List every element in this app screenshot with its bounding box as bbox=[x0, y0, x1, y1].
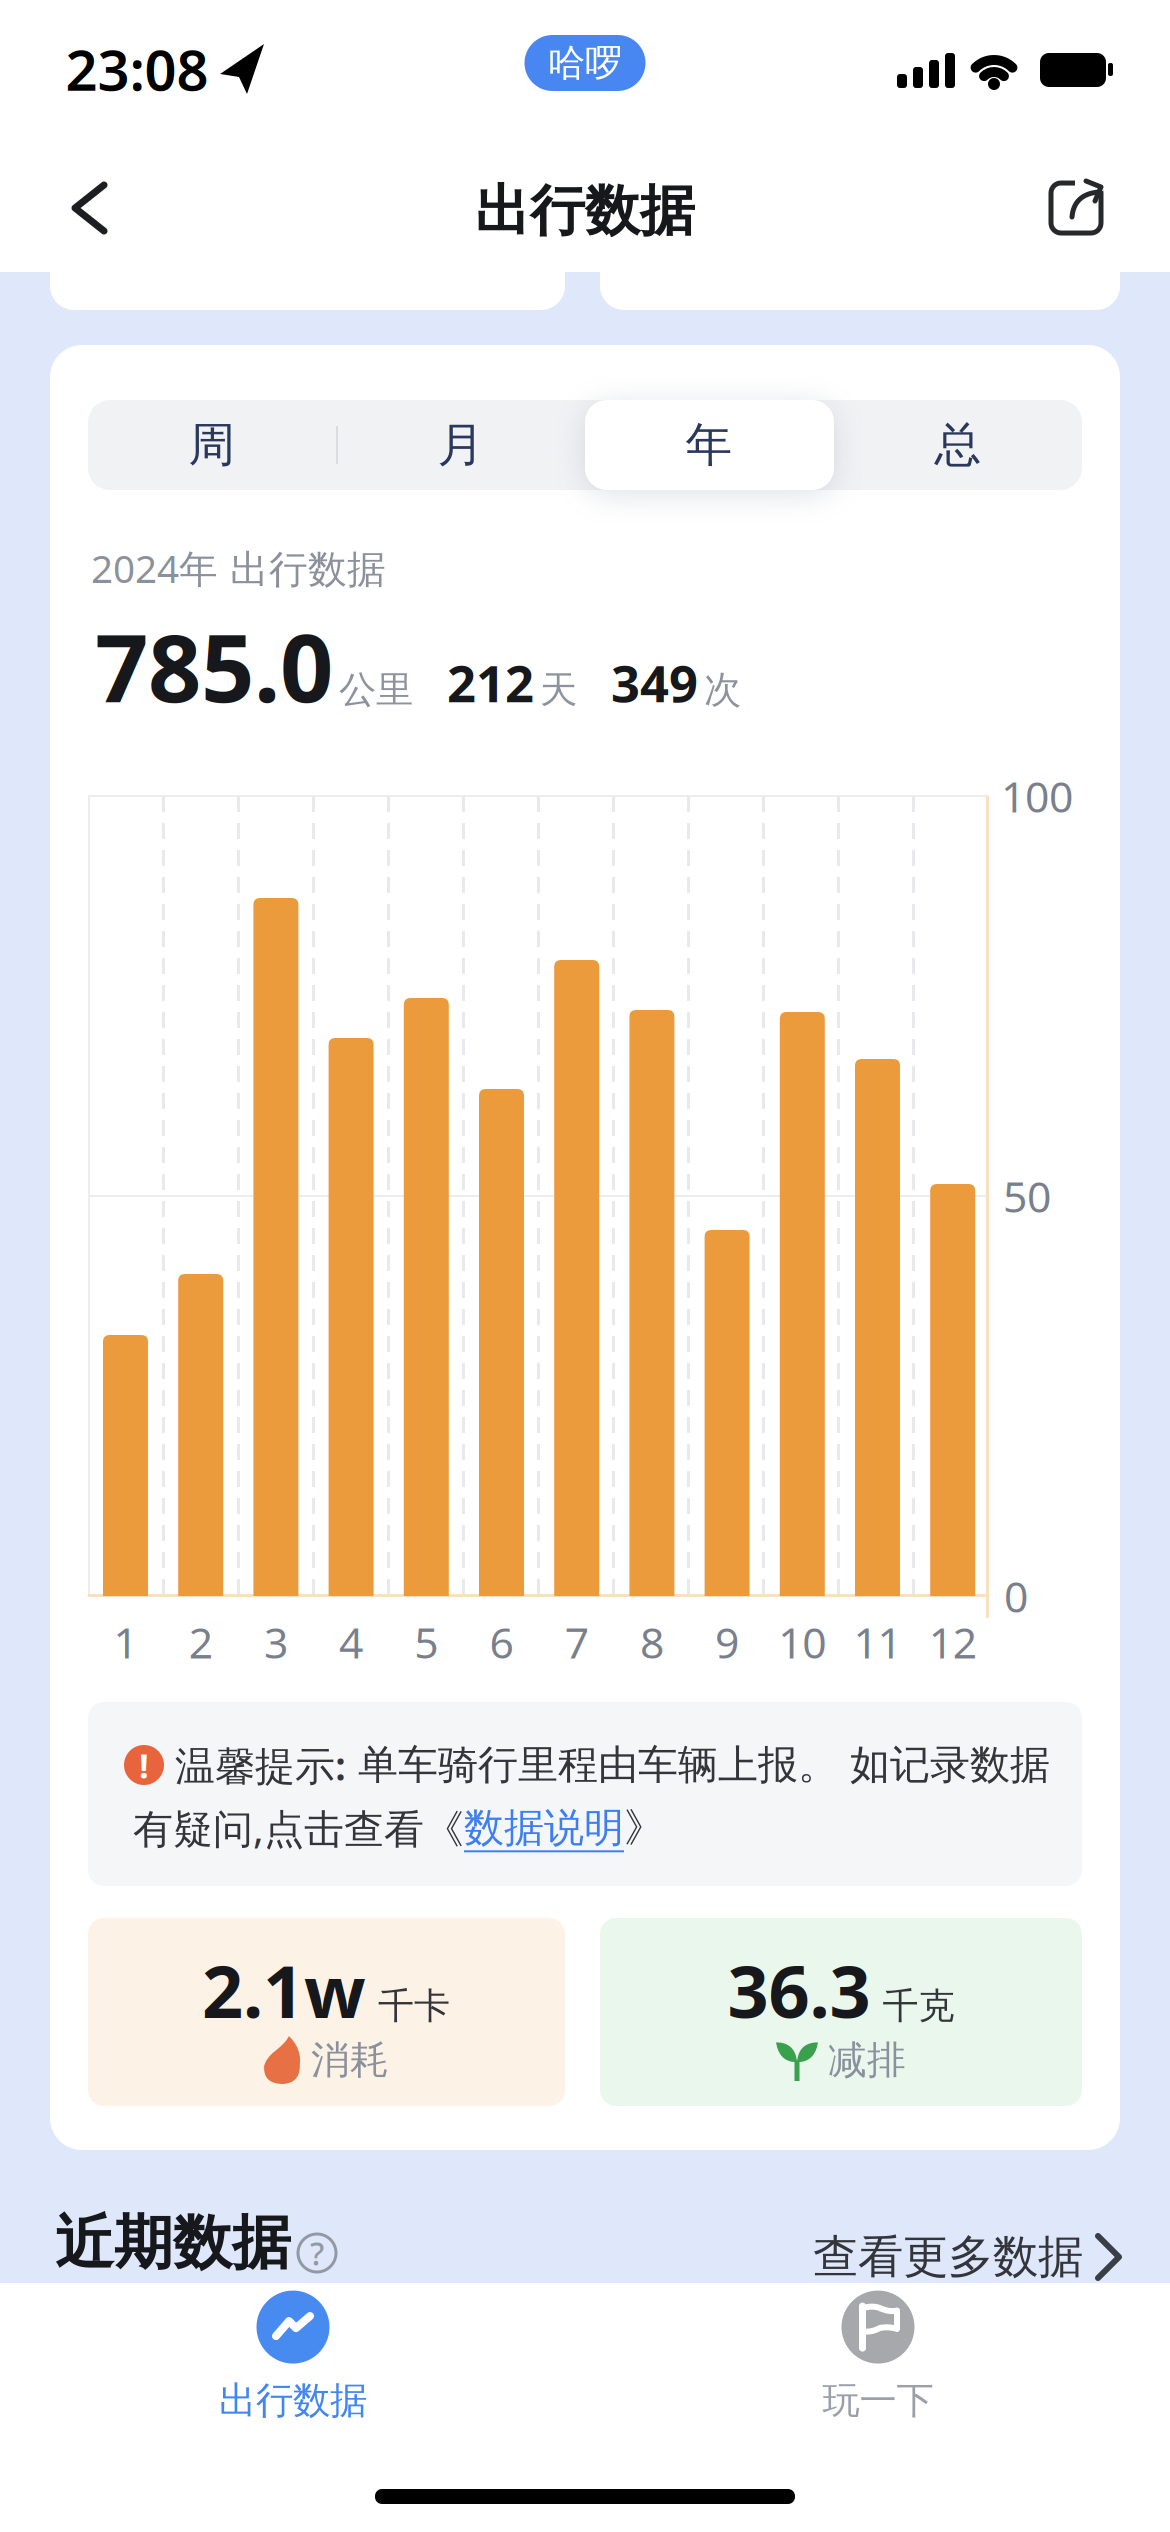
staticText: 总 bbox=[934, 416, 981, 474]
staticText: 2 bbox=[189, 1614, 213, 1670]
staticText: 温馨提示: bbox=[175, 1738, 346, 1791]
staticText: 天 bbox=[540, 667, 577, 713]
staticText: 4 bbox=[339, 1614, 363, 1670]
staticText: 36.3 bbox=[727, 1942, 870, 2038]
staticText: 100 bbox=[1001, 768, 1073, 824]
staticText: 23:08 bbox=[65, 32, 208, 106]
staticText: 次 bbox=[704, 667, 741, 713]
staticText: 6 bbox=[489, 1614, 513, 1670]
staticText: 周 bbox=[188, 416, 235, 474]
button[interactable]: 查看更多数据 bbox=[813, 2229, 1123, 2285]
staticText: 2.1w bbox=[202, 1942, 366, 2038]
staticText: 0 bbox=[1004, 1568, 1028, 1624]
staticText: 玩一下 bbox=[822, 2378, 933, 2423]
staticText: 公里 bbox=[339, 667, 413, 713]
staticText: 1 bbox=[113, 1614, 137, 1670]
staticText: 9 bbox=[715, 1614, 739, 1670]
staticText: 50 bbox=[1003, 1168, 1051, 1224]
staticText: 千克 bbox=[882, 1984, 954, 2028]
staticText: 消耗 bbox=[311, 2036, 389, 2084]
button[interactable]: 周 bbox=[88, 400, 336, 490]
staticText: 12 bbox=[929, 1614, 977, 1670]
button[interactable] bbox=[55, 168, 125, 248]
staticText: 10 bbox=[778, 1614, 826, 1670]
staticText: 月 bbox=[437, 416, 484, 474]
button[interactable]: 出行数据 bbox=[153, 2282, 433, 2432]
button[interactable]: 总 bbox=[834, 400, 1082, 490]
staticText: 出行数据 bbox=[219, 2378, 367, 2423]
staticText: 》 bbox=[624, 1803, 664, 1852]
button[interactable]: 月 bbox=[337, 400, 585, 490]
staticText: 年 bbox=[685, 416, 732, 474]
staticText: 349 bbox=[611, 649, 698, 716]
staticText: 减排 bbox=[828, 2036, 906, 2084]
staticText: ? bbox=[310, 2232, 324, 2274]
staticText: 785.0 bbox=[95, 604, 333, 728]
staticText: 3 bbox=[264, 1614, 288, 1670]
staticText: 单车骑行里程由车辆上报。 如记录数据 bbox=[346, 1740, 1050, 1789]
staticText: 7 bbox=[565, 1614, 589, 1670]
staticText: 有疑问,点击查看《 bbox=[133, 1801, 464, 1854]
button[interactable]: 数据说明 bbox=[464, 1803, 624, 1852]
staticText: 数据说明 bbox=[464, 1803, 624, 1852]
staticText: 8 bbox=[640, 1614, 664, 1670]
staticText: 哈啰 bbox=[548, 40, 622, 86]
staticText: 查看更多数据 bbox=[813, 2229, 1083, 2285]
staticText: 出行数据 bbox=[475, 177, 695, 244]
button[interactable] bbox=[1051, 175, 1115, 239]
button[interactable]: 玩一下 bbox=[738, 2282, 1018, 2432]
staticText: 近期数据 bbox=[55, 2207, 291, 2279]
staticText: 5 bbox=[414, 1614, 438, 1670]
staticText: 11 bbox=[853, 1614, 901, 1670]
button[interactable]: ? bbox=[294, 2230, 340, 2276]
staticText: 212 bbox=[447, 649, 534, 716]
button[interactable]: 年 bbox=[585, 400, 833, 490]
staticText: 千卡 bbox=[378, 1984, 450, 2028]
staticText: ! bbox=[139, 1742, 149, 1788]
staticText: 2024年 出行数据 bbox=[91, 542, 386, 594]
